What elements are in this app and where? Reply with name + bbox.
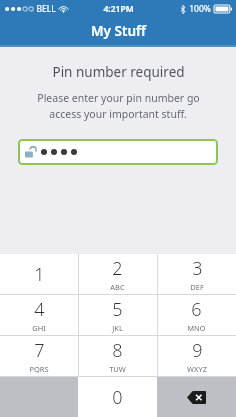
staticText: 2 <box>112 256 123 281</box>
staticText: PQRS <box>29 364 49 374</box>
staticText: MNO <box>187 323 206 333</box>
button[interactable]: 4 <box>0 295 78 335</box>
button[interactable]: Delete <box>157 377 236 417</box>
staticText: Pin number required <box>52 63 185 81</box>
button[interactable]: 0 <box>78 377 157 417</box>
staticText: 1 <box>34 262 45 287</box>
staticText: 8 <box>112 338 123 363</box>
staticText: 9 <box>192 338 203 363</box>
staticText: 5 <box>112 297 123 322</box>
staticText: access your important stuff. <box>49 107 187 121</box>
staticText: DEF <box>190 282 204 292</box>
button[interactable]: 9 <box>157 336 236 376</box>
button[interactable]: 8 <box>78 336 157 376</box>
button[interactable]: 2 <box>78 254 157 294</box>
staticText: 4 <box>34 297 45 322</box>
staticText: 7 <box>34 338 45 363</box>
button[interactable] <box>18 139 218 165</box>
staticText: GHI <box>32 323 46 333</box>
staticText: Please enter your pin number go <box>37 91 200 105</box>
staticText: ABC <box>110 282 125 292</box>
staticText: JKL <box>112 323 123 333</box>
button[interactable]: 3 <box>157 254 236 294</box>
staticText: 3 <box>192 256 203 281</box>
button[interactable]: 5 <box>78 295 157 335</box>
staticText: WXYZ <box>187 364 207 374</box>
staticText: 0 <box>112 385 123 410</box>
staticText: 100% <box>189 3 211 15</box>
staticText: My Stuff <box>91 22 146 40</box>
button[interactable]: 7 <box>0 336 78 376</box>
staticText: 4:21PM <box>103 3 134 15</box>
button[interactable]: 1 <box>0 254 78 294</box>
button[interactable]: 6 <box>157 295 236 335</box>
staticText: TUW <box>109 364 126 374</box>
staticText: 6 <box>191 297 202 322</box>
staticText: BELL <box>36 3 56 15</box>
